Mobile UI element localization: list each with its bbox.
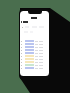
button[interactable] [20,63,49,66]
button[interactable] [20,60,49,63]
button[interactable] [20,17,49,19]
button[interactable] [20,57,49,60]
button[interactable] [20,39,49,42]
button[interactable] [20,54,49,57]
button[interactable] [21,21,49,23]
button[interactable] [20,42,49,45]
button[interactable] [20,48,49,51]
button[interactable] [20,51,49,54]
button[interactable] [20,45,49,48]
button[interactable] [20,66,49,69]
